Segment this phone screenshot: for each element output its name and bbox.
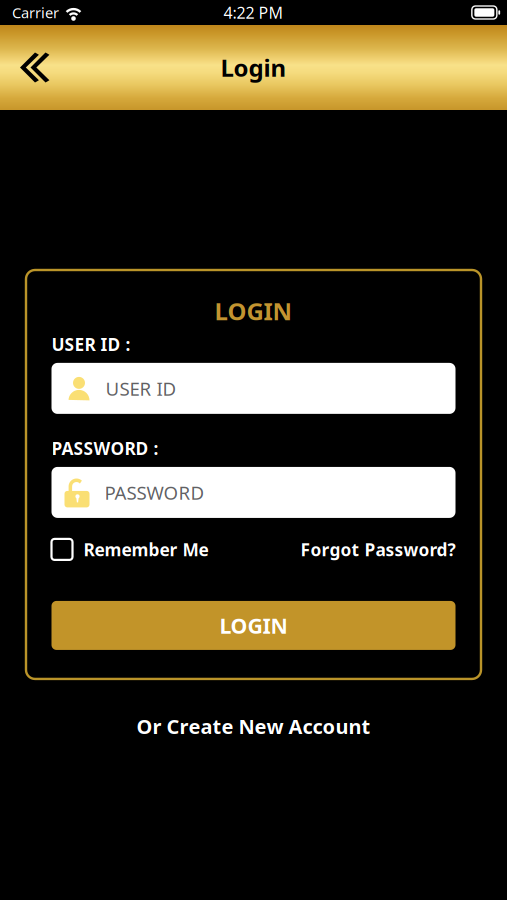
staticText: LOGIN (214, 295, 292, 327)
staticText: 4:22 PM (223, 2, 283, 23)
staticText: Or Create New Account (136, 713, 370, 739)
button[interactable]: Or Create New Account (116, 679, 390, 749)
staticText: LOGIN (219, 611, 287, 640)
staticText: USER ID (105, 376, 176, 401)
staticText: Forgot Password? (300, 538, 455, 561)
button[interactable]: Forgot Password? (300, 538, 455, 561)
staticText: USER ID : (51, 333, 130, 356)
button[interactable]: Back (0, 34, 65, 100)
staticText: PASSWORD : (51, 437, 158, 460)
staticText: PASSWORD (104, 480, 204, 505)
staticText: Remember Me (83, 538, 208, 561)
staticText: Carrier (12, 3, 59, 22)
button[interactable]: Remember Me (51, 538, 208, 561)
staticText: Login (220, 52, 286, 83)
button[interactable]: LOGIN (51, 601, 455, 650)
